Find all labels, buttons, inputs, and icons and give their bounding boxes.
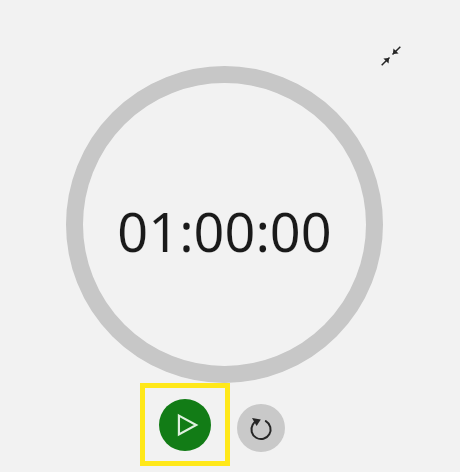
button[interactable]: Start timer bbox=[140, 383, 230, 466]
button[interactable]: Collapse bbox=[375, 40, 407, 72]
button[interactable]: Reset timer bbox=[237, 404, 285, 452]
staticText: 01:00:00 bbox=[117, 194, 332, 256]
